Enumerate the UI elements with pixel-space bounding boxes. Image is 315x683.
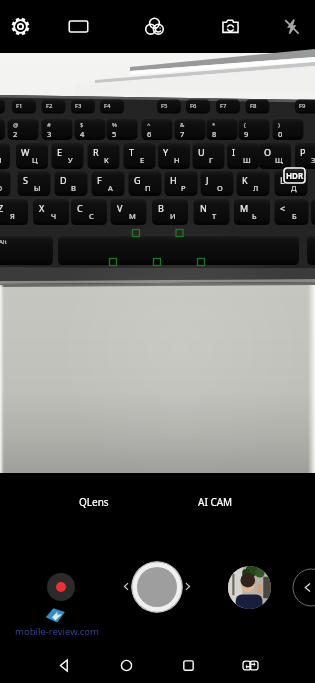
staticText: 9 [244, 129, 249, 139]
staticText: Т [212, 211, 217, 221]
staticText: F1 [16, 102, 23, 110]
staticText: О [217, 183, 223, 193]
staticText: G [134, 174, 141, 186]
staticText: Л [253, 183, 259, 193]
staticText: К [104, 155, 109, 165]
staticText: T [129, 146, 135, 158]
staticText: F9 [299, 102, 306, 110]
button[interactable]: AI CAM [190, 494, 240, 510]
staticText: М [129, 211, 136, 221]
button[interactable]: HDR [284, 168, 305, 183]
staticText: З [311, 155, 315, 165]
staticText: Й [0, 155, 2, 165]
staticText: И [170, 211, 176, 221]
staticText: Я [10, 211, 15, 221]
staticText: Y [163, 146, 169, 158]
staticText: L [280, 174, 285, 186]
staticText: QLens [79, 495, 109, 509]
staticText: & [180, 121, 185, 129]
staticText: Ч [51, 211, 57, 221]
staticText: А [108, 183, 113, 193]
staticText: В [71, 183, 76, 193]
staticText: Г [209, 155, 213, 165]
button[interactable]: More modes [293, 569, 315, 606]
staticText: F2 [46, 102, 53, 110]
staticText: Ы [34, 183, 41, 193]
button[interactable]: Filters [116, 0, 192, 53]
staticText: 5 [112, 129, 117, 139]
staticText: 6 [147, 129, 152, 139]
staticText: K [242, 174, 248, 186]
button[interactable]: Flash off [268, 0, 315, 53]
staticText: < [280, 202, 286, 214]
staticText: M [240, 202, 249, 214]
button[interactable]: Switch camera [192, 0, 268, 53]
staticText: F3 [75, 102, 82, 110]
staticText: F6 [190, 102, 197, 110]
staticText: U [198, 146, 205, 158]
staticText: # [47, 121, 51, 129]
staticText: C [77, 202, 83, 214]
staticText: V [117, 202, 123, 214]
staticText: X [39, 202, 45, 214]
staticText: I [232, 146, 236, 158]
button[interactable]: Back [34, 647, 95, 683]
staticText: 4 [80, 129, 85, 139]
staticText: P [300, 146, 306, 158]
staticText: Б [292, 211, 297, 221]
staticText: HDR [286, 170, 304, 181]
button[interactable]: Home [95, 647, 157, 683]
staticText: R [93, 146, 99, 158]
staticText: F [97, 174, 102, 186]
staticText: У [68, 155, 73, 165]
staticText: F4 [104, 102, 111, 110]
button[interactable]: Next mode [181, 580, 194, 593]
staticText: 2 [13, 129, 18, 139]
staticText: Z [0, 202, 4, 214]
staticText: Ш [243, 155, 251, 165]
staticText: ( [244, 121, 246, 129]
staticText: @ [13, 121, 19, 129]
staticText: П [145, 183, 151, 193]
staticText: Щ [275, 155, 283, 165]
button[interactable]: Swap windows [219, 647, 281, 683]
staticText: Е [140, 155, 145, 165]
staticText: % [112, 121, 117, 129]
staticText: E [57, 146, 63, 158]
staticText: O [264, 146, 272, 158]
staticText: W [21, 146, 30, 158]
staticText: Н [174, 155, 180, 165]
staticText: Ц [32, 155, 38, 165]
staticText: D [60, 174, 67, 186]
staticText: H [170, 174, 177, 186]
staticText: Ф [0, 183, 3, 193]
button[interactable]: Previous mode [120, 580, 133, 593]
button[interactable]: Gallery [228, 566, 271, 609]
staticText: ^ [147, 121, 151, 129]
staticText: F7 [220, 102, 227, 110]
staticText: 3 [47, 129, 52, 139]
staticText: * [212, 121, 216, 129]
button[interactable]: QLens [70, 494, 118, 510]
staticText: Р [181, 183, 186, 193]
button[interactable]: Settings [0, 0, 40, 53]
staticText: 0 [278, 129, 283, 139]
staticText: S [23, 174, 28, 186]
button[interactable]: Shutter [131, 561, 183, 613]
staticText: mobile-review.com [15, 625, 99, 638]
staticText: Д [291, 183, 297, 193]
button[interactable]: Recents [157, 647, 219, 683]
staticText: С [89, 211, 94, 221]
staticText: 8 [212, 129, 217, 139]
staticText: F5 [161, 102, 168, 110]
staticText: $ [80, 121, 84, 129]
staticText: F8 [250, 102, 257, 110]
staticText: Alt [0, 238, 7, 246]
staticText: J [206, 174, 209, 186]
staticText: ) [278, 121, 280, 129]
staticText: N [200, 202, 207, 214]
button[interactable]: Video resolution [40, 0, 116, 53]
staticText: AI CAM [198, 495, 233, 509]
staticText: B [158, 202, 164, 214]
button[interactable]: Record video [47, 573, 75, 601]
